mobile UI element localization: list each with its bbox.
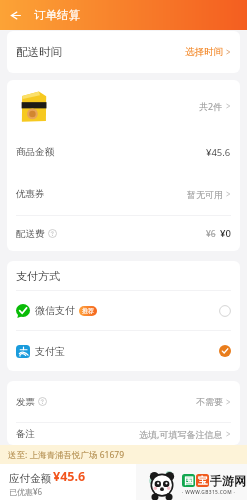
- button[interactable]: 微信支付: [7, 291, 240, 330]
- button[interactable]: 配送时间: [7, 31, 240, 73]
- staticText: 配送时间: [16, 45, 62, 59]
- staticText: 发票: [16, 396, 35, 408]
- staticText: 应付金额: [9, 472, 51, 485]
- staticText: 选填,可填写备注信息: [139, 428, 223, 440]
- staticText: 宝: [198, 475, 208, 487]
- staticText: 手游网: [210, 473, 246, 488]
- staticText: 配送费: [16, 228, 45, 240]
- button[interactable]: Back: [4, 4, 26, 26]
- staticText: 推荐: [82, 307, 94, 315]
- staticText: 选择时间: [185, 46, 223, 58]
- staticText: 提交订单: [182, 475, 226, 489]
- staticText: · WWW.GB315.COM ·: [182, 489, 236, 496]
- staticText: 支付宝: [35, 345, 65, 358]
- button[interactable]: 提交订单: [161, 464, 247, 500]
- staticText: ¥45.6: [206, 146, 231, 159]
- staticText: ¥0: [220, 227, 231, 240]
- staticText: 不需要: [196, 396, 223, 407]
- staticText: 国: [184, 475, 194, 487]
- staticText: 已优惠¥6: [9, 486, 43, 497]
- staticText: ¥6: [206, 228, 216, 240]
- staticText: 订单结算: [34, 8, 80, 22]
- staticText: 备注: [16, 428, 35, 440]
- staticText: 微信支付: [35, 304, 75, 317]
- button[interactable]: 支付宝: [7, 331, 240, 371]
- button[interactable]: 发票: [7, 381, 240, 422]
- staticText: 送至: 上海青浦吾悦广场 61679: [8, 449, 125, 461]
- button[interactable]: 备注: [7, 423, 240, 445]
- button[interactable]: 共2件: [7, 80, 240, 131]
- button[interactable]: 优惠券: [7, 173, 240, 215]
- staticText: 商品金额: [16, 146, 54, 158]
- staticText: 优惠券: [16, 188, 45, 200]
- staticText: 共2件: [199, 100, 223, 112]
- staticText: 支付方式: [16, 269, 60, 283]
- staticText: ¥45.6: [53, 468, 86, 485]
- staticText: 暂无可用: [187, 189, 223, 200]
